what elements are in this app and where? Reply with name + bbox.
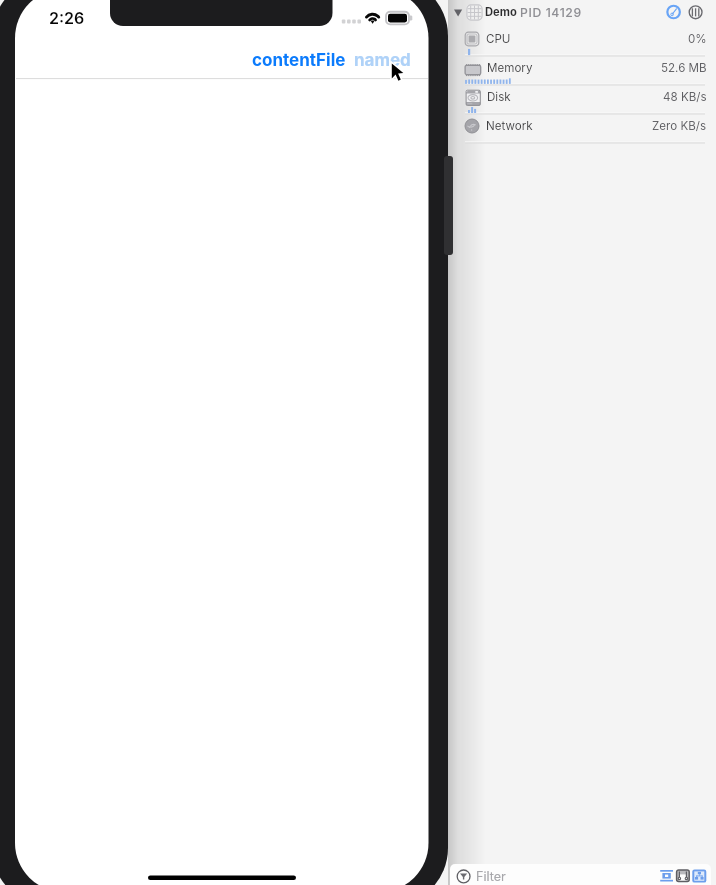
staticText: Zero KB/s — [652, 119, 707, 133]
staticText: contentFile — [252, 50, 346, 71]
button[interactable]: Hide navigator — [660, 869, 674, 883]
staticText: CPU — [486, 32, 511, 46]
button[interactable]: Memory — [464, 57, 707, 79]
staticText: PID 14129 — [520, 5, 582, 20]
staticText: 2:26 — [49, 8, 85, 27]
staticText: Network — [486, 119, 533, 133]
button[interactable]: Gauges — [665, 4, 682, 21]
staticText: 48 KB/s — [663, 90, 707, 104]
staticText: Demo — [485, 5, 517, 19]
staticText: 0% — [688, 32, 707, 46]
button[interactable]: contentFile — [252, 50, 346, 71]
button[interactable]: Network — [464, 115, 707, 137]
button[interactable]: Threads — [687, 4, 704, 21]
button[interactable]: View hierarchy — [692, 869, 707, 884]
staticText: Filter — [476, 869, 506, 884]
staticText: Memory — [487, 61, 533, 75]
staticText: 52.6 MB — [661, 61, 707, 75]
button[interactable]: named — [354, 50, 411, 71]
button[interactable] — [450, 864, 711, 885]
staticText: named — [354, 50, 411, 71]
button[interactable]: CPU — [464, 28, 707, 50]
staticText: Disk — [487, 90, 511, 104]
button[interactable]: Disk — [464, 86, 707, 108]
button[interactable]: Hide debug area — [676, 869, 690, 883]
